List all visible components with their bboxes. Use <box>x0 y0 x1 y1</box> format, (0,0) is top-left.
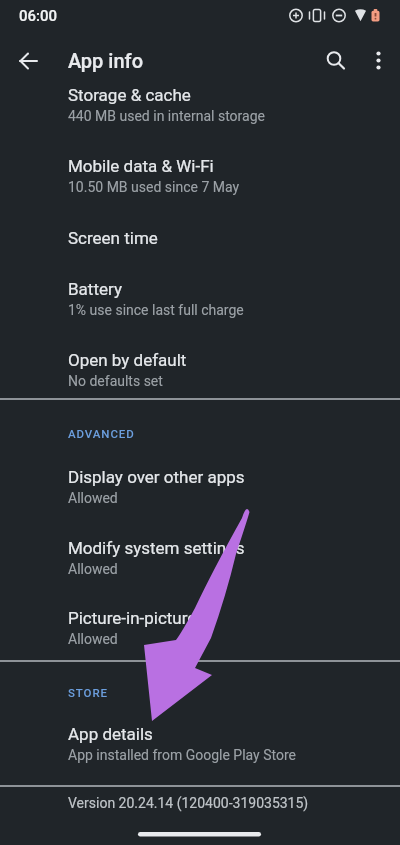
button[interactable] <box>10 44 44 78</box>
staticText: 1% use since last full charge <box>68 302 244 318</box>
staticText: Allowed <box>68 631 118 647</box>
button[interactable] <box>362 44 396 78</box>
button[interactable]: Open by default <box>0 337 400 401</box>
staticText: Screen time <box>68 228 158 248</box>
staticText: Modify system settings <box>68 538 245 558</box>
staticText: Allowed <box>68 561 118 577</box>
staticText: Battery <box>68 279 122 299</box>
button[interactable]: Screen time <box>0 206 400 270</box>
staticText: Picture-in-picture <box>68 608 197 628</box>
button[interactable]: Mobile data & Wi-Fi <box>0 143 400 207</box>
staticText: No defaults set <box>68 373 163 389</box>
staticText: App installed from Google Play Store <box>68 747 296 763</box>
staticText: STORE <box>68 686 108 699</box>
staticText: 06:00 <box>19 7 58 25</box>
staticText: 10.50 MB used since 7 May <box>68 179 240 195</box>
staticText: Version 20.24.14 (120400-319035315) <box>68 795 309 811</box>
staticText: Allowed <box>68 490 118 506</box>
button[interactable] <box>318 44 352 78</box>
staticText: App info <box>68 49 144 72</box>
staticText: Open by default <box>68 350 187 370</box>
button[interactable]: Modify system settings <box>0 525 400 589</box>
staticText: Mobile data & Wi-Fi <box>68 156 214 176</box>
staticText: App details <box>68 724 153 744</box>
button[interactable]: Display over other apps <box>0 454 400 518</box>
staticText: Storage & cache <box>68 85 191 105</box>
button[interactable]: Battery <box>0 266 400 330</box>
button[interactable]: Storage & cache <box>0 72 400 136</box>
button[interactable]: App details <box>0 711 400 775</box>
button[interactable]: Picture-in-picture <box>0 595 400 659</box>
staticText: 440 MB used in internal storage <box>68 108 265 124</box>
staticText: ADVANCED <box>68 427 135 440</box>
staticText: Display over other apps <box>68 467 245 487</box>
